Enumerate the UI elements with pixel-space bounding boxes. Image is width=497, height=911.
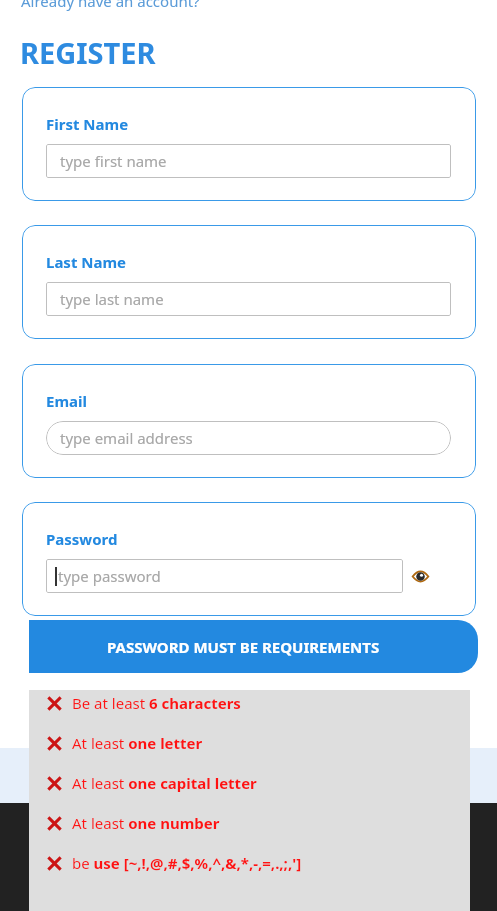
staticText: be use [~,!,@,#,$,%,^,&,*,-,=,.,;,'] [72, 853, 302, 873]
staticText: At least one number [72, 813, 220, 833]
button[interactable]: Already have an account? [21, 0, 200, 11]
staticText: type password [58, 566, 161, 586]
button[interactable]: First Name [22, 87, 476, 201]
staticText: At least one capital letter [72, 773, 257, 793]
button[interactable]: Last Name [22, 225, 476, 339]
staticText: REGISTER [20, 33, 156, 72]
staticText: type first name [60, 151, 167, 171]
button[interactable]: Password [22, 502, 476, 616]
staticText: At least one letter [72, 733, 203, 753]
button[interactable]: Show password [403, 559, 437, 593]
staticText: Be at least 6 characters [72, 693, 241, 713]
staticText: Password [46, 529, 118, 549]
staticText: First Name [46, 114, 129, 134]
staticText: type email address [60, 428, 193, 448]
staticText: Last Name [46, 252, 127, 272]
button[interactable]: PASSWORD MUST BE REQUIREMENTS [29, 620, 478, 673]
staticText: PASSWORD MUST BE REQUIREMENTS [107, 637, 380, 657]
staticText: Already have an account? [21, 0, 200, 11]
button[interactable]: Email [22, 364, 476, 478]
staticText: type last name [60, 289, 164, 309]
staticText: Email [46, 391, 87, 411]
